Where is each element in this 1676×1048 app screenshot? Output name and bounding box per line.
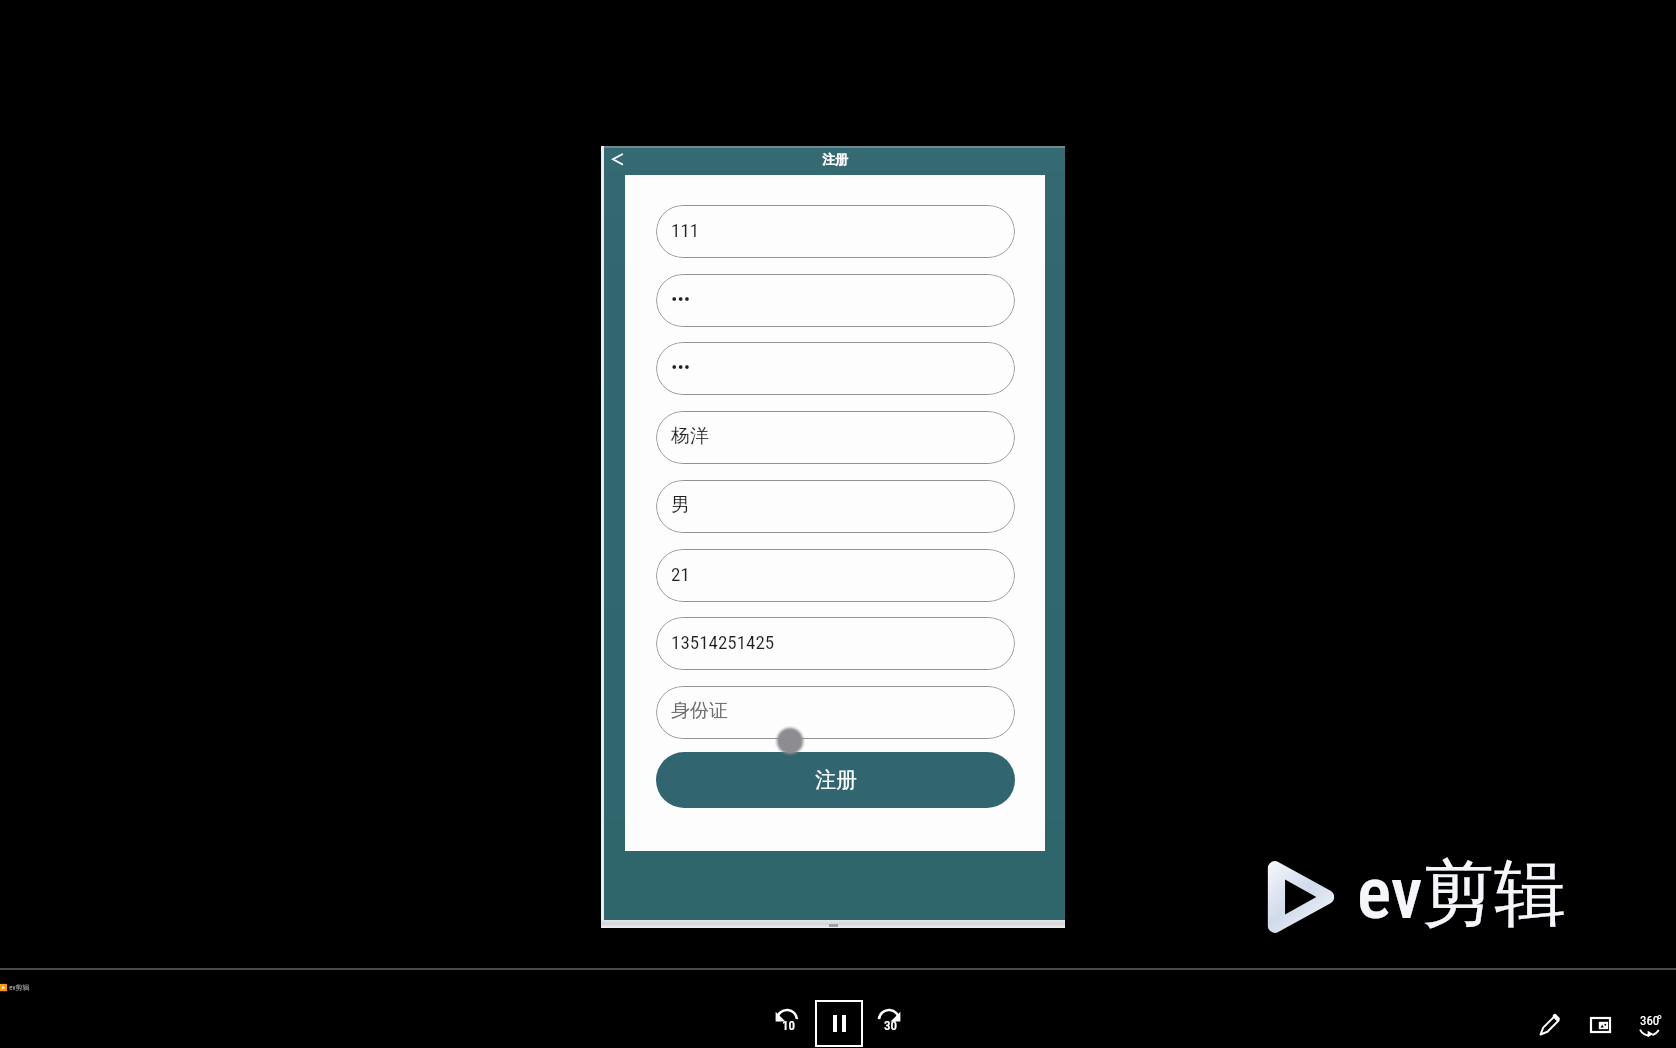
- staticText: 10: [782, 1018, 795, 1033]
- button[interactable]: 身份证: [656, 686, 1015, 739]
- staticText: ▶ ev剪辑: [0, 983, 30, 992]
- staticText: 30: [884, 1018, 897, 1033]
- staticText: •••: [671, 288, 691, 310]
- button[interactable]: Rewind 10 seconds: [770, 1005, 804, 1039]
- button[interactable]: 男: [656, 480, 1015, 533]
- staticText: ev剪辑: [1357, 849, 1567, 931]
- button[interactable]: Draw: [1532, 1007, 1568, 1043]
- button[interactable]: Picture in picture: [1590, 1017, 1611, 1033]
- button[interactable]: 注册: [656, 752, 1015, 808]
- staticText: 111: [671, 219, 700, 241]
- button[interactable]: 360 view: [1636, 1012, 1670, 1040]
- staticText: 21: [671, 563, 690, 585]
- button[interactable]: 111: [656, 205, 1015, 258]
- staticText: 杨洋: [671, 424, 709, 448]
- button[interactable]: 杨洋: [656, 411, 1015, 464]
- button[interactable]: 21: [656, 549, 1015, 602]
- staticText: 360: [1640, 1013, 1660, 1028]
- button[interactable]: Back: [605, 147, 629, 171]
- staticText: 注册: [822, 151, 848, 167]
- staticText: 13514251425: [671, 631, 775, 653]
- button[interactable]: Pause: [815, 1000, 863, 1047]
- button[interactable]: •••: [656, 274, 1015, 327]
- button[interactable]: Forward 30 seconds: [872, 1005, 906, 1039]
- staticText: 男: [671, 493, 690, 517]
- button[interactable]: •••: [656, 342, 1015, 395]
- staticText: 身份证: [671, 699, 728, 723]
- button[interactable]: 13514251425: [656, 617, 1015, 670]
- staticText: •••: [671, 356, 691, 378]
- staticText: 注册: [815, 767, 857, 793]
